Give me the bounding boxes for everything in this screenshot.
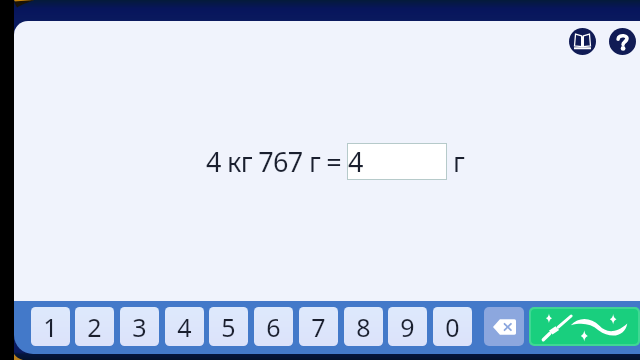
button[interactable]: 2: [75, 307, 114, 346]
staticText: 8: [356, 310, 371, 344]
button[interactable]: Check answer: [529, 307, 640, 346]
staticText: 1: [43, 310, 58, 344]
staticText: 9: [400, 310, 415, 344]
button[interactable]: Help: [609, 28, 636, 55]
staticText: 5: [221, 310, 236, 344]
button[interactable]: 4: [347, 143, 447, 180]
button[interactable]: 4: [165, 307, 204, 346]
staticText: 3: [132, 310, 147, 344]
staticText: 4: [177, 310, 192, 344]
button[interactable]: 8: [344, 307, 383, 346]
button[interactable]: 5: [209, 307, 248, 346]
staticText: 6: [266, 310, 281, 344]
button[interactable]: 9: [388, 307, 427, 346]
button[interactable]: 1: [31, 307, 70, 346]
button[interactable]: 7: [299, 307, 338, 346]
staticText: 4: [348, 143, 363, 180]
staticText: 0: [445, 310, 460, 344]
button[interactable]: 3: [120, 307, 159, 346]
button[interactable]: Backspace: [484, 307, 524, 346]
button[interactable]: 0: [433, 307, 472, 346]
button[interactable]: 6: [254, 307, 293, 346]
button[interactable]: Dictionary: [569, 28, 596, 55]
staticText: 4 кг 767 г =: [206, 143, 342, 180]
staticText: 7: [311, 310, 326, 344]
staticText: г: [453, 143, 465, 180]
staticText: 2: [87, 310, 102, 344]
